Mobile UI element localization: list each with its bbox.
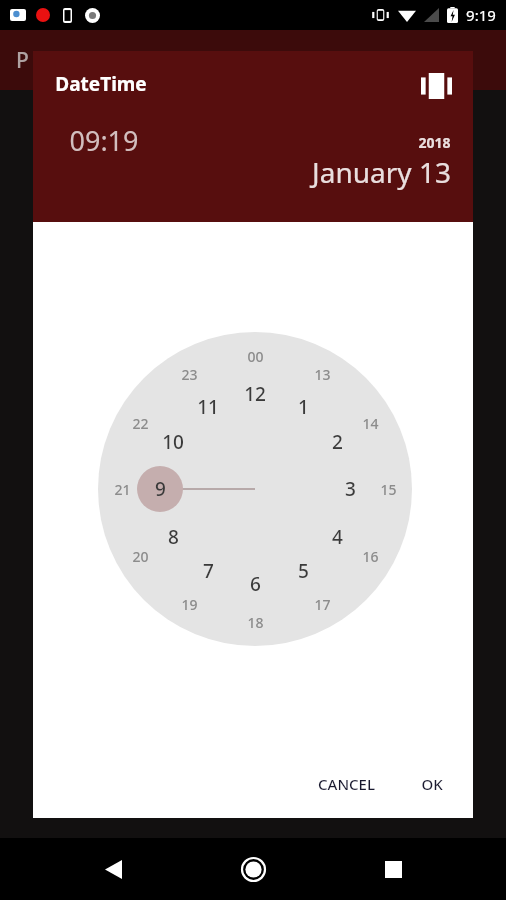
button[interactable]: Back xyxy=(86,842,140,896)
staticText: 21 xyxy=(114,480,131,499)
staticText: 12 xyxy=(244,381,266,407)
button[interactable]: 19 xyxy=(173,588,205,620)
staticText: 11 xyxy=(197,394,219,420)
staticText: P xyxy=(16,46,29,75)
button[interactable]: 12 xyxy=(239,378,271,410)
staticText: 17 xyxy=(314,595,331,614)
staticText: OK xyxy=(421,774,443,794)
button[interactable]: 9 xyxy=(144,473,176,505)
button[interactable]: OK xyxy=(407,764,457,804)
staticText: January 13 xyxy=(312,153,451,191)
button[interactable]: 18 xyxy=(239,606,271,638)
button[interactable]: Home xyxy=(226,842,280,896)
staticText: 5 xyxy=(298,558,309,584)
staticText: 2018 xyxy=(418,133,451,152)
button[interactable]: 6 xyxy=(239,568,271,600)
staticText: 23 xyxy=(181,365,198,384)
staticText: 8 xyxy=(168,524,179,550)
button[interactable]: Recents xyxy=(366,842,420,896)
staticText: 18 xyxy=(247,613,264,632)
button[interactable]: 22 xyxy=(124,407,156,439)
button[interactable]: 13 xyxy=(306,358,338,390)
button[interactable]: 17 xyxy=(306,588,338,620)
staticText: 3 xyxy=(345,476,356,502)
button[interactable]: 16 xyxy=(354,540,386,572)
button[interactable]: Toggle picker view xyxy=(413,63,459,109)
staticText: 1 xyxy=(298,394,309,420)
staticText: 00 xyxy=(247,347,264,366)
staticText: 10 xyxy=(162,429,184,455)
button[interactable]: 3 xyxy=(334,473,366,505)
staticText: 15 xyxy=(380,480,397,499)
button[interactable]: 11 xyxy=(192,391,224,423)
button[interactable]: 2 xyxy=(321,426,353,458)
staticText: 6 xyxy=(250,571,261,597)
staticText: 2 xyxy=(332,429,343,455)
button[interactable]: 15 xyxy=(372,473,404,505)
staticText: 9 xyxy=(155,476,166,502)
staticText: 14 xyxy=(362,414,379,433)
button[interactable]: 23 xyxy=(173,358,205,390)
button[interactable]: 4 xyxy=(321,521,353,553)
button[interactable]: CANCEL xyxy=(304,764,389,804)
button[interactable]: 5 xyxy=(287,555,319,587)
button[interactable]: 8 xyxy=(157,521,189,553)
staticText: 7 xyxy=(203,558,214,584)
button[interactable]: 7 xyxy=(192,555,224,587)
staticText: 9:19 xyxy=(466,5,496,25)
button[interactable]: 00 xyxy=(239,340,271,372)
staticText: 20 xyxy=(132,547,149,566)
button[interactable]: 21 xyxy=(106,473,138,505)
staticText: 16 xyxy=(362,547,379,566)
staticText: 19 xyxy=(181,595,198,614)
staticText: DateTime xyxy=(55,71,147,97)
button[interactable]: 14 xyxy=(354,407,386,439)
staticText: 22 xyxy=(132,414,149,433)
button[interactable]: 10 xyxy=(157,426,189,458)
staticText: CANCEL xyxy=(318,774,375,794)
staticText: 09:19 xyxy=(69,122,139,159)
staticText: 13 xyxy=(314,365,331,384)
staticText: 4 xyxy=(332,524,343,550)
button[interactable]: 1 xyxy=(287,391,319,423)
button[interactable]: 20 xyxy=(124,540,156,572)
